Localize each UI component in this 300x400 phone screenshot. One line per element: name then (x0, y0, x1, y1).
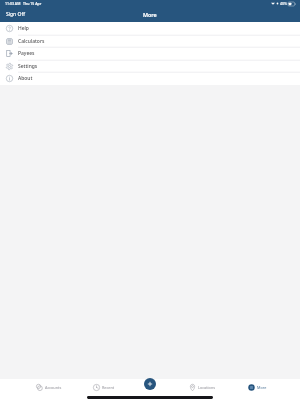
button[interactable]: More (235, 381, 279, 393)
button[interactable]: Calculators (0, 35, 300, 48)
staticText: Help (18, 25, 29, 32)
staticText: Accounts (45, 385, 62, 390)
staticText: 40% (280, 1, 287, 6)
button[interactable]: Add (144, 378, 156, 390)
staticText: More (143, 11, 157, 18)
staticText: Locations (198, 385, 216, 390)
button[interactable]: About (0, 72, 300, 85)
button[interactable]: Settings (0, 60, 300, 73)
staticText: More (257, 385, 267, 390)
staticText: 11:03 AM (5, 1, 21, 6)
staticText: Thu 15 Apr (23, 1, 42, 6)
staticText: Sign Off (6, 11, 25, 18)
button[interactable]: Locations (180, 381, 224, 393)
button[interactable]: Accounts (27, 381, 71, 393)
staticText: Payees (18, 50, 35, 57)
staticText: Settings (18, 63, 38, 70)
staticText: About (18, 75, 33, 82)
button[interactable]: Payees (0, 47, 300, 60)
button[interactable]: Help (0, 22, 300, 35)
button[interactable]: Sign Off (4, 9, 27, 20)
staticText: Calculators (18, 38, 45, 45)
button[interactable]: Recent (82, 381, 126, 393)
staticText: Recent (102, 385, 115, 390)
